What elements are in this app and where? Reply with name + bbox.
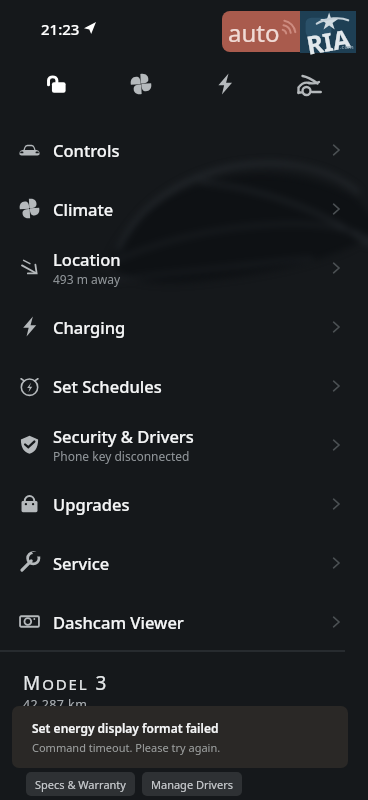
staticText: Set Schedules xyxy=(53,375,162,397)
button[interactable]: Climate xyxy=(115,58,167,110)
button[interactable]: Controls xyxy=(0,120,368,179)
button[interactable]: Upgrades xyxy=(0,474,368,533)
staticText: 493 m away xyxy=(53,271,121,287)
staticText: Location xyxy=(53,248,121,270)
staticText: Security & Drivers xyxy=(53,425,194,447)
staticText: 42 287 km xyxy=(23,696,88,713)
button[interactable]: Specs & Warranty xyxy=(26,772,135,796)
button[interactable]: Charging xyxy=(199,58,251,110)
staticText: MODEL 3 xyxy=(23,670,109,696)
button[interactable]: Set Schedules xyxy=(0,356,368,415)
button[interactable]: Manage Drivers xyxy=(142,772,242,796)
button[interactable]: Location xyxy=(0,238,368,297)
staticText: Manage Drivers xyxy=(151,777,233,792)
staticText: .com xyxy=(340,43,354,51)
button[interactable]: Dashcam Viewer xyxy=(0,592,368,651)
staticText: Phone key disconnected xyxy=(53,448,190,464)
staticText: Service xyxy=(53,552,110,574)
staticText: auto xyxy=(228,16,280,49)
staticText: Set energy display format failed xyxy=(32,720,219,736)
staticText: RIA xyxy=(304,20,353,62)
button[interactable]: Charging xyxy=(0,297,368,356)
staticText: Controls xyxy=(53,139,120,161)
staticText: Upgrades xyxy=(53,493,130,515)
button[interactable]: Open trunk xyxy=(283,58,335,110)
button[interactable]: Climate xyxy=(0,179,368,238)
staticText: Dashcam Viewer xyxy=(53,611,184,633)
button[interactable]: Service xyxy=(0,533,368,592)
staticText: Charging xyxy=(53,316,126,338)
button[interactable]: Unlock xyxy=(30,58,82,110)
staticText: 21:23 xyxy=(41,19,80,39)
staticText: Climate xyxy=(53,198,114,220)
button[interactable]: Security & Drivers xyxy=(0,415,368,474)
staticText: Command timeout. Please try again. xyxy=(32,740,221,755)
staticText: Specs & Warranty xyxy=(35,777,126,792)
